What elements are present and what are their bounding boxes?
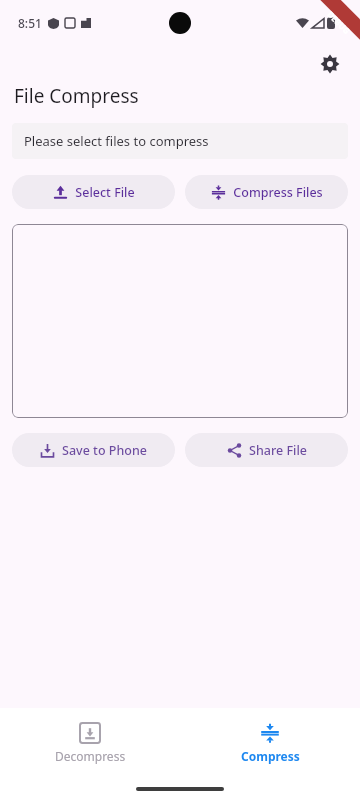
button[interactable]: Decompress bbox=[0, 717, 180, 770]
staticText: Share File bbox=[249, 442, 307, 459]
button[interactable]: Select File bbox=[12, 175, 175, 209]
staticText: Compress Files bbox=[233, 184, 323, 201]
staticText: Select File bbox=[75, 184, 135, 201]
staticText: Compress bbox=[241, 748, 300, 764]
button[interactable]: Settings bbox=[310, 45, 350, 83]
button[interactable]: Compress bbox=[180, 717, 360, 770]
staticText: 8:51 bbox=[18, 15, 42, 31]
staticText: Save to Phone bbox=[62, 442, 147, 459]
staticText: DEBUG bbox=[325, 9, 353, 36]
button[interactable]: Compress Files bbox=[185, 175, 348, 209]
button[interactable] bbox=[12, 224, 348, 418]
button[interactable]: Share File bbox=[185, 433, 348, 467]
staticText: Please select files to compress bbox=[24, 132, 209, 150]
button[interactable]: Save to Phone bbox=[12, 433, 175, 467]
staticText: File Compress bbox=[14, 83, 139, 109]
staticText: Decompress bbox=[55, 748, 126, 764]
